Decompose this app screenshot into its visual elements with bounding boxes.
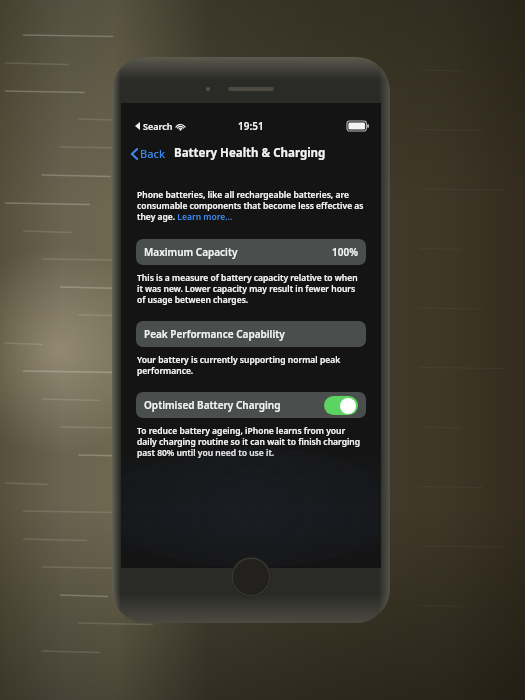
- staticText: Search: [143, 120, 173, 132]
- staticText: Battery Health & Charging: [174, 145, 326, 161]
- staticText: To reduce battery ageing, iPhone learns …: [137, 425, 365, 458]
- button[interactable]: Optimised Battery Charging: [136, 392, 366, 418]
- staticText: 19:51: [238, 119, 264, 133]
- button[interactable]: Home: [231, 557, 271, 597]
- button[interactable]: Back: [129, 144, 168, 163]
- staticText: Phone batteries, like all rechargeable b…: [137, 189, 365, 222]
- staticText: Back: [140, 146, 166, 161]
- button[interactable]: Maximum Capacity: [136, 239, 366, 265]
- staticText: Peak Performance Capability: [144, 327, 285, 341]
- button[interactable]: Peak Performance Capability: [136, 321, 366, 347]
- staticText: Maximum Capacity: [144, 245, 238, 259]
- staticText: This is a measure of battery capacity re…: [137, 272, 365, 305]
- staticText: Optimised Battery Charging: [144, 398, 281, 412]
- staticText: Your battery is currently supporting nor…: [137, 354, 365, 376]
- button[interactable]: Optimised Battery Charging toggle, on: [324, 396, 358, 415]
- staticText: 100%: [332, 245, 358, 259]
